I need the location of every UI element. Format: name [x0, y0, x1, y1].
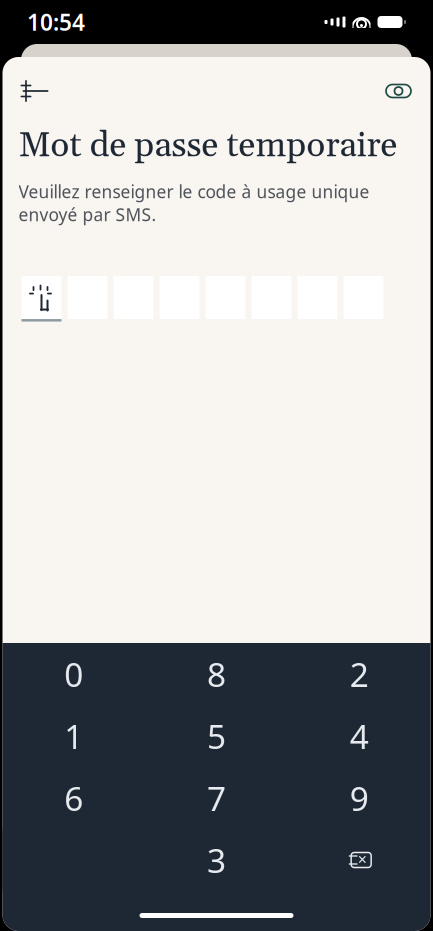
button[interactable]: 4	[288, 705, 430, 767]
button[interactable]: 1	[2, 705, 145, 767]
staticText: 6	[64, 776, 83, 820]
staticText: Veuillez renseigner le code à usage uniq…	[18, 180, 369, 226]
button[interactable]: Back	[17, 70, 53, 112]
staticText: 10:54	[27, 7, 85, 37]
button[interactable]: 3	[145, 829, 288, 891]
staticText: 3	[207, 838, 226, 882]
staticText: 5	[207, 714, 226, 758]
staticText: 7	[207, 776, 226, 820]
button[interactable]: 6	[2, 767, 145, 829]
button[interactable]: 0	[2, 643, 145, 705]
button[interactable]: 5	[145, 705, 288, 767]
staticText: ×	[358, 848, 367, 870]
staticText: 1	[64, 714, 83, 758]
button[interactable]: 8	[145, 643, 288, 705]
staticText: Mot de passe temporaire	[18, 124, 397, 168]
staticText: 0	[64, 652, 83, 696]
button[interactable]: 9	[288, 767, 430, 829]
staticText: 8	[207, 652, 226, 696]
button[interactable]: Delete	[288, 829, 430, 891]
button[interactable]: 2	[288, 643, 430, 705]
staticText: 9	[350, 776, 369, 820]
staticText: 4	[350, 714, 369, 758]
staticText: 2	[350, 652, 369, 696]
button[interactable]: 7	[145, 767, 288, 829]
button[interactable]: Show code	[381, 74, 415, 108]
